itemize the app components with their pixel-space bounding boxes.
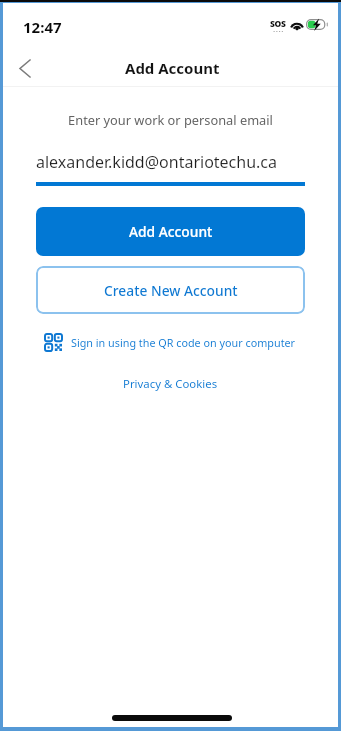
- button[interactable]: Back: [7, 50, 43, 86]
- staticText: 12:47: [23, 17, 62, 37]
- button[interactable]: Sign in using the QR code on your comput…: [3, 334, 338, 351]
- staticText: Add Account: [125, 58, 220, 78]
- button[interactable]: Add Account: [36, 207, 305, 256]
- staticText: Enter your work or personal email: [3, 111, 338, 128]
- button[interactable]: Create New Account: [36, 266, 305, 314]
- staticText: SOS: [270, 18, 286, 30]
- button[interactable]: Privacy & Cookies: [123, 376, 218, 392]
- staticText: Sign in using the QR code on your comput…: [71, 335, 296, 350]
- staticText: Add Account: [129, 222, 213, 241]
- staticText: alexander.kidd@ontariotechu.ca: [36, 151, 278, 173]
- staticText: Create New Account: [104, 281, 238, 300]
